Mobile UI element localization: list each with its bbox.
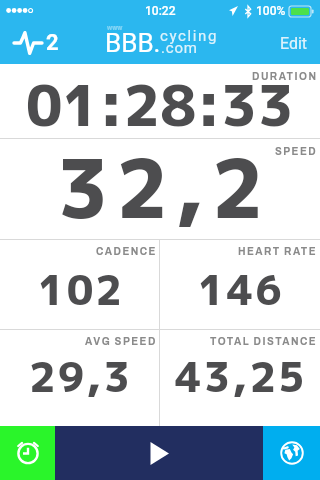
- staticText: www: [107, 24, 123, 32]
- button[interactable]: TOTAL DISTANCE: [160, 330, 320, 426]
- button[interactable]: Map: [263, 426, 320, 480]
- button[interactable]: DURATION: [0, 64, 320, 138]
- button[interactable]: AVG SPEED: [0, 330, 159, 426]
- staticText: Edit: [280, 34, 308, 53]
- staticText: HEART RATE: [238, 246, 318, 257]
- staticText: 102: [38, 261, 124, 318]
- button[interactable]: Start: [55, 426, 263, 480]
- staticText: DURATION: [252, 71, 318, 82]
- staticText: TOTAL DISTANCE: [210, 336, 318, 347]
- staticText: AVG SPEED: [85, 336, 157, 347]
- staticText: 32,2: [57, 132, 271, 232]
- button[interactable]: Timer: [0, 426, 55, 480]
- button[interactable]: HEART RATE: [160, 240, 320, 329]
- button[interactable]: Edit: [268, 22, 320, 64]
- staticText: 146: [198, 261, 284, 318]
- staticText: CADENCE: [96, 246, 157, 257]
- staticText: 100%: [256, 4, 286, 18]
- staticText: 29,3: [29, 348, 133, 405]
- staticText: 43,25: [175, 348, 307, 405]
- button[interactable]: SPEED: [0, 139, 320, 239]
- staticText: 2: [46, 30, 59, 56]
- staticText: .com: [161, 39, 198, 57]
- button[interactable]: CADENCE: [0, 240, 159, 329]
- staticText: 10:22: [145, 4, 176, 18]
- staticText: BBB.: [105, 28, 161, 58]
- staticText: 01:28:33: [26, 66, 294, 140]
- button[interactable]: Sensors: [0, 22, 67, 64]
- staticText: cycling: [160, 27, 218, 45]
- staticText: SPEED: [275, 146, 318, 157]
